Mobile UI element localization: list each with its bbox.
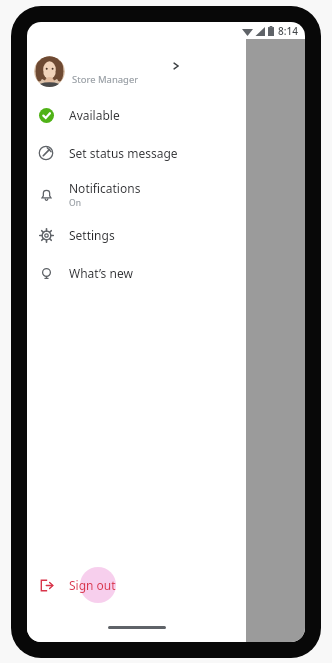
button[interactable]: Close navigation drawer [246,39,305,642]
staticText: Available [69,107,120,123]
staticText: 8:14 [278,24,298,38]
staticText: Settings [69,227,115,243]
button[interactable]: Notifications [27,172,246,216]
staticText: On [69,197,81,209]
button[interactable]: What’s new [27,254,246,292]
staticText: Store Manager [72,73,139,86]
button[interactable]: Settings [27,216,246,254]
button[interactable]: Sign out [27,566,246,604]
staticText: Sign out [69,577,116,593]
button[interactable]: Store Manager [27,48,246,94]
staticText: What’s new [69,265,133,281]
button[interactable]: Set status message [27,134,246,172]
staticText: Set status message [69,145,178,161]
staticText: Notifications [69,180,141,196]
button[interactable]: Available [27,96,246,134]
